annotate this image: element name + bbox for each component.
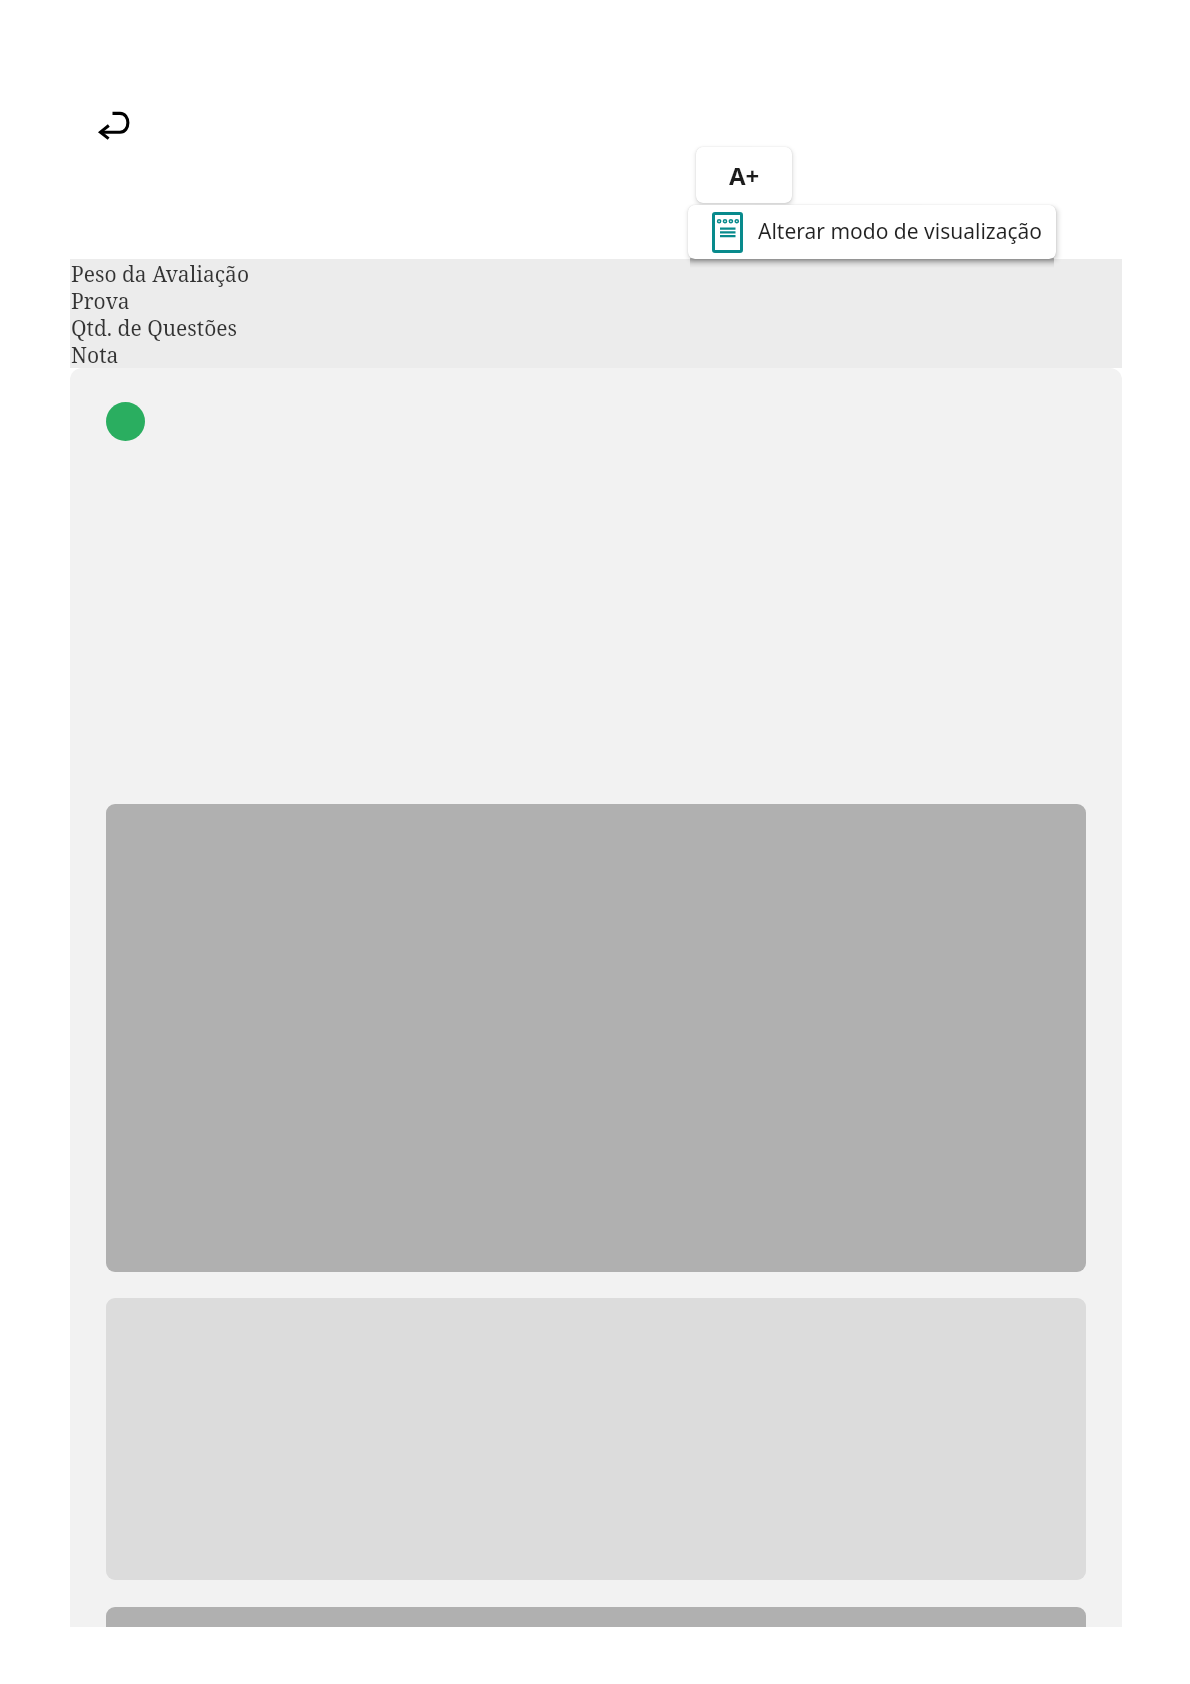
button[interactable]: A+ (696, 147, 792, 203)
staticText: Alterar modo de visualização (758, 217, 1043, 246)
button[interactable]: Alterar modo de visualização (688, 205, 1056, 259)
button[interactable]: Voltar (73, 90, 151, 168)
staticText: Peso da Avaliação Prova Qtd. de Questões… (71, 260, 249, 369)
staticText: A+ (729, 159, 760, 192)
button[interactable]: Status (106, 402, 145, 441)
